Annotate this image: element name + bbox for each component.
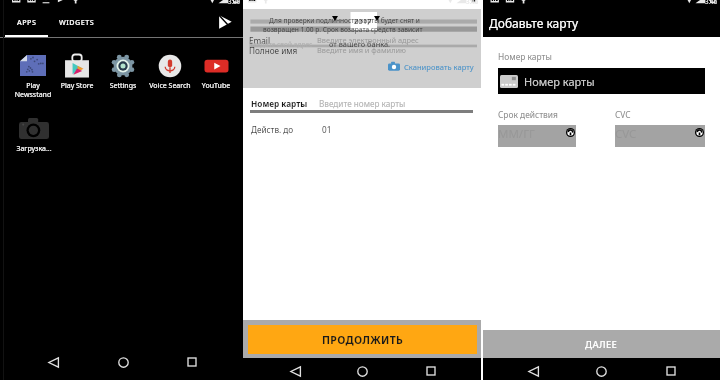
staticText: Введите электронный адрес [317,35,419,45]
staticText: Введите свой адрес [249,40,313,49]
staticText: Для проверки подлинности карты будет сня… [269,16,420,25]
staticText: YouTube [190,81,242,91]
button[interactable]: WIDGETS [53,9,101,35]
button[interactable]: Загрузка... [8,116,60,154]
staticText: Voice Search [144,81,196,91]
button[interactable]: Play Store [51,53,103,91]
button[interactable]: Recents [422,362,440,380]
staticText: CVC [615,126,637,142]
staticText: ДАЛЕЕ [585,338,618,351]
staticText: WIDGETS [59,17,95,27]
staticText: APPS [17,17,37,27]
button[interactable]: Сканировать карту [388,61,474,72]
staticText: Срок действия [498,109,558,120]
button[interactable]: ММ/ГГ [498,125,576,147]
button[interactable]: Play Store [214,12,234,32]
staticText: Введите номер карты [319,98,406,109]
button[interactable]: Voice Search [144,53,196,91]
staticText: Номер карты [251,98,308,109]
button[interactable]: Back [286,362,304,380]
staticText: Полное имя [249,45,298,56]
staticText: Загрузка... [8,144,60,154]
staticText: ПРОДОЛЖИТЬ [322,333,404,347]
staticText: 01 [322,124,332,135]
staticText: 2017 [354,16,372,26]
staticText: Play Newsstand [7,81,59,99]
button[interactable]: Back [524,362,542,380]
button[interactable]: Settings [97,53,149,91]
staticText: от вашего банка. [329,39,391,49]
staticText: Действ. до [251,124,294,135]
staticText: Номер карты [524,74,595,89]
staticText: ММ/ГГ [498,126,535,142]
staticText: 3:39 [228,0,241,5]
staticText: Сканировать карту [404,62,474,72]
staticText: Добавьте карту [489,15,579,31]
button[interactable]: Recents [183,353,201,371]
staticText: возвращен 1.00 р. Срок возврата средств … [263,25,423,34]
button[interactable]: CVC [615,125,705,147]
button[interactable]: APPS [5,9,48,35]
staticText: Email [249,35,271,46]
staticText: 3:46 [466,0,479,5]
button[interactable]: YouTube [190,53,242,91]
staticText: CVC [615,109,631,120]
staticText: Номер карты [498,51,552,62]
button[interactable]: ДАЛЕЕ [483,330,720,358]
staticText: Введите имя и фамилию [317,45,407,55]
button[interactable]: Home [592,362,610,380]
button[interactable]: ПРОДОЛЖИТЬ [248,325,477,354]
button[interactable]: Play Newsstand [7,53,59,99]
staticText: Play Store [51,81,103,91]
staticText: 3:46 [705,0,718,5]
button[interactable]: Recents [662,362,680,380]
button[interactable]: Home [114,353,132,371]
button[interactable]: Back [44,353,62,371]
button[interactable]: Home [353,362,371,380]
staticText: Settings [97,81,149,91]
button[interactable]: Номер карты [498,68,705,94]
